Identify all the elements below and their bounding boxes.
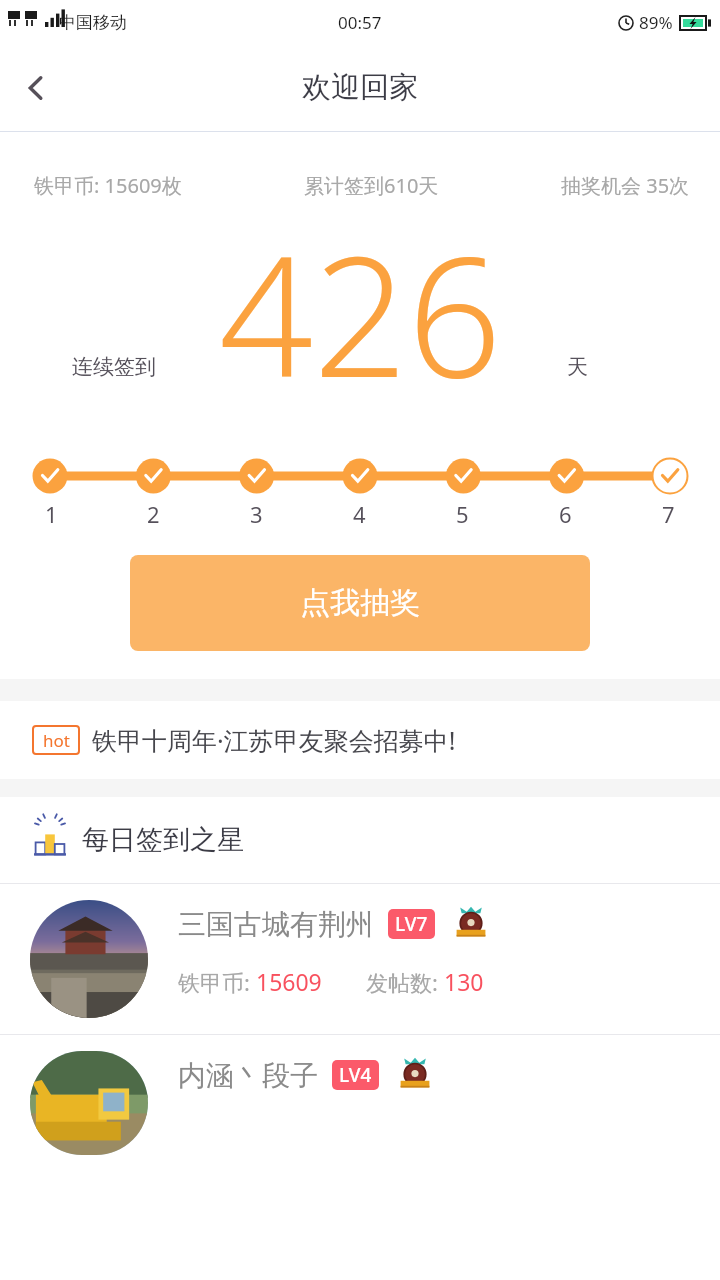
staticText: 4 bbox=[353, 499, 366, 529]
staticText: 连续签到 bbox=[72, 354, 156, 380]
button[interactable]: hot bbox=[0, 701, 720, 779]
staticText: 1 bbox=[45, 499, 58, 529]
staticText: 00:57 bbox=[338, 11, 382, 34]
staticText: 每日签到之星 bbox=[82, 823, 244, 857]
staticText: 2 bbox=[147, 499, 160, 529]
staticText: 5 bbox=[456, 499, 469, 529]
staticText: 内涵丶段子 bbox=[178, 1058, 318, 1093]
staticText: 发帖数: bbox=[366, 967, 444, 997]
staticText: LV7 bbox=[395, 911, 428, 937]
staticText: 铁甲币: 15609枚 bbox=[34, 172, 182, 199]
staticText: 三国古城有荆州 bbox=[178, 907, 374, 942]
staticText: 130 bbox=[444, 966, 484, 997]
staticText: 天 bbox=[567, 354, 588, 380]
staticText: 欢迎回家 bbox=[302, 69, 418, 106]
button[interactable]: Back bbox=[0, 52, 72, 124]
staticText: 中国移动 bbox=[59, 12, 127, 33]
button[interactable]: 三国古城有荆州 bbox=[0, 884, 720, 1034]
staticText: hot bbox=[43, 729, 70, 752]
staticText: 抽奖机会 35次 bbox=[561, 172, 690, 199]
button[interactable]: 点我抽奖 bbox=[130, 555, 590, 651]
staticText: 铁甲币: bbox=[178, 967, 256, 997]
staticText: 7 bbox=[662, 499, 675, 529]
staticText: 89% bbox=[639, 11, 673, 34]
staticText: 累计签到610天 bbox=[304, 172, 439, 199]
staticText: LV4 bbox=[339, 1062, 372, 1088]
button[interactable]: 内涵丶段子 bbox=[0, 1035, 720, 1155]
staticText: 6 bbox=[559, 499, 572, 529]
staticText: 3 bbox=[250, 499, 263, 529]
staticText: 426 bbox=[219, 201, 502, 426]
staticText: 15609 bbox=[256, 966, 322, 997]
staticText: 点我抽奖 bbox=[300, 584, 420, 622]
staticText: 铁甲十周年·江苏甲友聚会招募中! bbox=[92, 723, 456, 757]
